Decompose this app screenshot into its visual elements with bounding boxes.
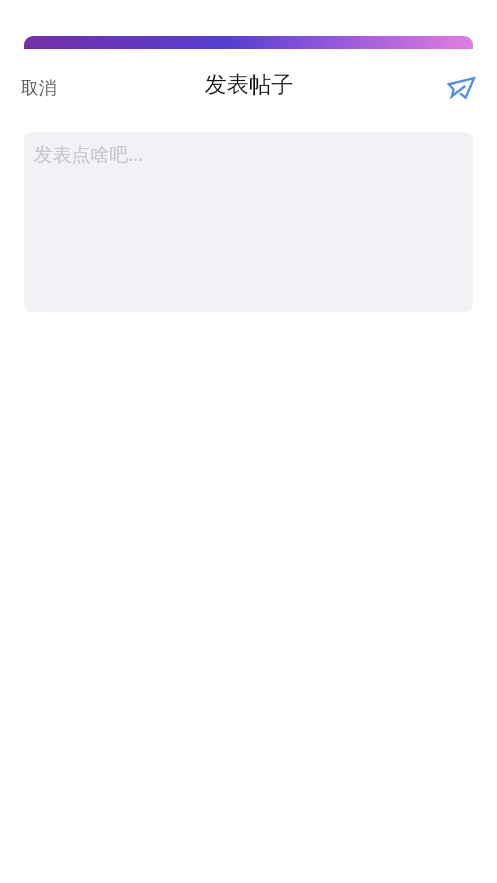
button[interactable]: 发表点啥吧... [24, 132, 473, 312]
button[interactable]: 取消 [5, 63, 72, 113]
staticText: 发表帖子 [204, 71, 294, 99]
staticText: 发表点啥吧... [34, 141, 144, 167]
button[interactable]: Send post [442, 68, 482, 108]
staticText: 取消 [21, 77, 56, 99]
